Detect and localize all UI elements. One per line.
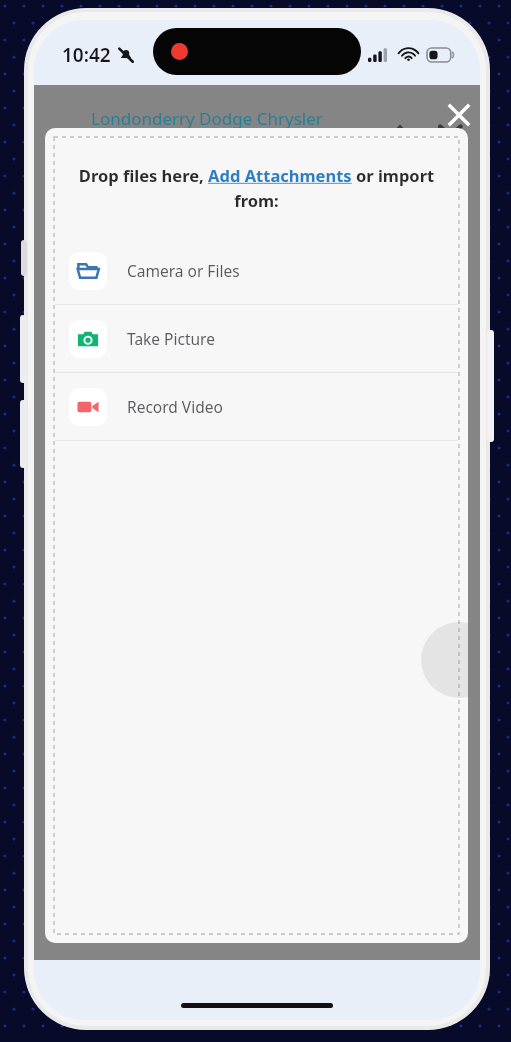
staticText: Take Picture bbox=[127, 328, 215, 349]
button[interactable]: Record Video bbox=[45, 373, 468, 440]
staticText: Drop files here, Add Attachments or impo… bbox=[71, 164, 442, 211]
staticText: Record Video bbox=[127, 396, 223, 417]
button[interactable]: Close bbox=[438, 94, 480, 136]
staticText: Camera or Files bbox=[127, 260, 240, 281]
staticText: Londonderry Dodge Chrysler bbox=[91, 107, 323, 130]
button[interactable]: Camera or Files bbox=[45, 237, 468, 304]
button[interactable]: Take Picture bbox=[45, 305, 468, 372]
staticText: 10:42 bbox=[62, 42, 111, 68]
